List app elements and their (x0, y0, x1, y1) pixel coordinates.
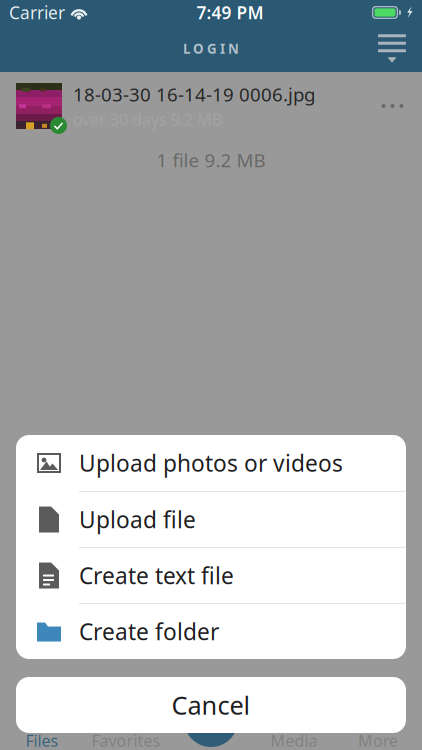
staticText: Files (25, 730, 58, 750)
staticText: More (358, 730, 398, 750)
button[interactable]: More (336, 732, 420, 750)
staticText: 18-03-30 16-14-19 0006.jpg (73, 82, 315, 107)
staticText: Upload photos or videos (79, 448, 343, 478)
button[interactable] (168, 732, 252, 750)
button[interactable]: Add (184, 693, 238, 747)
button[interactable]: Upload file (16, 491, 406, 547)
button[interactable]: Create folder (16, 603, 406, 659)
staticText: Create folder (79, 616, 219, 646)
button[interactable]: Create text file (16, 547, 406, 603)
staticText: Create text file (79, 560, 234, 590)
button[interactable]: Files (0, 732, 84, 750)
staticText: Cancel (171, 688, 250, 722)
button[interactable]: Sort (369, 25, 415, 72)
staticText: Media (270, 730, 317, 750)
staticText: Carrier (9, 1, 65, 24)
staticText: L O G I N (183, 40, 239, 57)
staticText: 7:49 PM (196, 1, 263, 24)
staticText: Upload file (79, 504, 196, 534)
staticText: 1 file 9.2 MB (156, 148, 265, 172)
button[interactable]: 18-03-30 16-14-19 0006.jpg (0, 76, 422, 136)
button[interactable]: Upload photos or videos (16, 435, 406, 491)
button[interactable]: Favorites (84, 732, 168, 750)
button[interactable]: Media (252, 732, 336, 750)
staticText: Favorites (91, 730, 160, 750)
button[interactable]: Cancel (0, 677, 422, 733)
